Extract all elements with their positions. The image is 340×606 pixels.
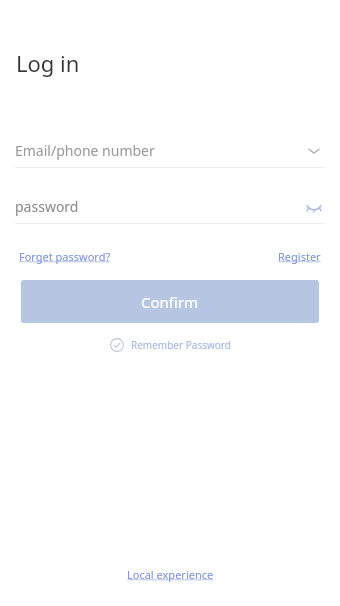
staticText: Local experience xyxy=(127,567,214,582)
staticText: Log in xyxy=(16,48,80,78)
staticText: Email/phone number xyxy=(15,141,155,160)
button[interactable]: Show accounts xyxy=(303,140,325,162)
button[interactable]: Toggle password visibility xyxy=(303,196,325,218)
button[interactable]: Email/phone number xyxy=(15,134,325,168)
staticText: password xyxy=(15,197,79,216)
button[interactable]: password xyxy=(15,190,325,224)
button[interactable]: Confirm xyxy=(21,280,319,323)
button[interactable]: Register xyxy=(278,249,321,264)
button[interactable]: Local experience xyxy=(123,563,218,586)
button[interactable]: Forget password? xyxy=(19,249,111,264)
staticText: Confirm xyxy=(141,292,199,312)
staticText: Register xyxy=(278,249,321,264)
staticText: Remember Password xyxy=(131,338,231,352)
staticText: Forget password? xyxy=(19,249,111,264)
button[interactable]: Remember Password xyxy=(108,336,233,354)
